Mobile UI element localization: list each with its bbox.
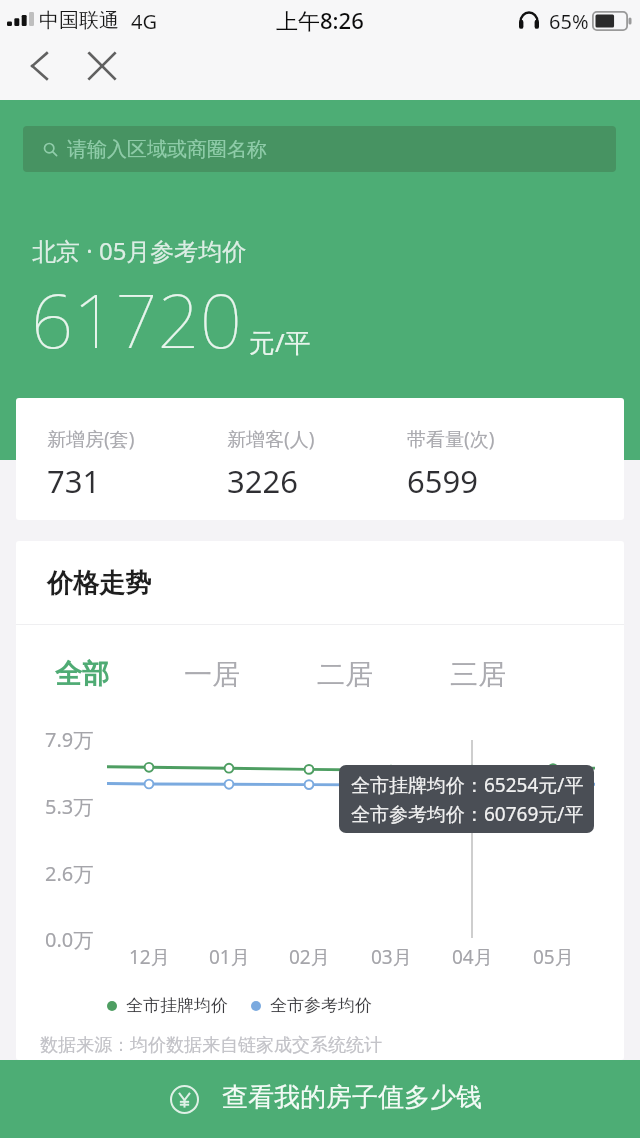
staticText: 带看量(次)	[407, 426, 495, 452]
button[interactable]: My house value	[0, 1060, 640, 1138]
button[interactable]: Close	[70, 42, 134, 90]
staticText: 全市挂牌均价：65254元/平	[351, 772, 584, 798]
staticText: 二居	[317, 657, 373, 692]
staticText: 中国联通	[39, 8, 119, 33]
staticText: 请输入区域或商圈名称	[67, 137, 267, 162]
button[interactable]: 新增房(套)	[16, 398, 196, 520]
button[interactable]: Back	[7, 42, 71, 90]
staticText: 03月	[371, 944, 412, 970]
staticText: 3226	[227, 460, 298, 502]
staticText: 12月	[129, 944, 170, 970]
staticText: 61720	[31, 269, 242, 370]
staticText: 5.3万	[45, 793, 94, 820]
staticText: 北京 · 05月参考均价	[32, 234, 247, 267]
other: My house value	[170, 1085, 199, 1114]
staticText: 05月	[533, 944, 574, 970]
button[interactable]: 全部	[32, 642, 132, 706]
staticText: 新增房(套)	[47, 426, 135, 452]
staticText: 65%	[549, 8, 589, 35]
staticText: 三居	[450, 657, 506, 692]
staticText: 数据来源：均价数据来自链家成交系统统计	[40, 1034, 382, 1057]
staticText: 4G	[131, 8, 157, 35]
staticText: 一居	[184, 657, 240, 692]
staticText: 6599	[407, 460, 478, 502]
staticText: 02月	[289, 944, 330, 970]
button[interactable]: 一居	[162, 642, 262, 706]
staticText: 新增客(人)	[227, 426, 315, 452]
staticText: 全市挂牌均价	[126, 995, 228, 1016]
staticText: 01月	[209, 944, 250, 970]
staticText: 查看我的房子值多少钱	[222, 1081, 482, 1114]
staticText: 全市参考均价	[270, 995, 372, 1016]
staticText: 0.0万	[45, 926, 94, 953]
staticText: 元/平	[249, 324, 311, 360]
button[interactable]: 三居	[428, 642, 528, 706]
button[interactable]: 新增客(人)	[196, 398, 376, 520]
button[interactable]: 带看量(次)	[376, 398, 556, 520]
staticText: 上午8:26	[276, 5, 364, 35]
staticText: 04月	[452, 944, 493, 970]
staticText: 2.6万	[45, 860, 94, 887]
staticText: 全部	[55, 657, 109, 691]
staticText: 731	[47, 460, 101, 502]
staticText: 价格走势	[47, 567, 151, 600]
button[interactable]: 请输入区域或商圈名称	[23, 126, 616, 172]
staticText: 7.9万	[45, 726, 94, 753]
button[interactable]: 二居	[295, 642, 395, 706]
staticText: 全市参考均价：60769元/平	[351, 801, 584, 827]
